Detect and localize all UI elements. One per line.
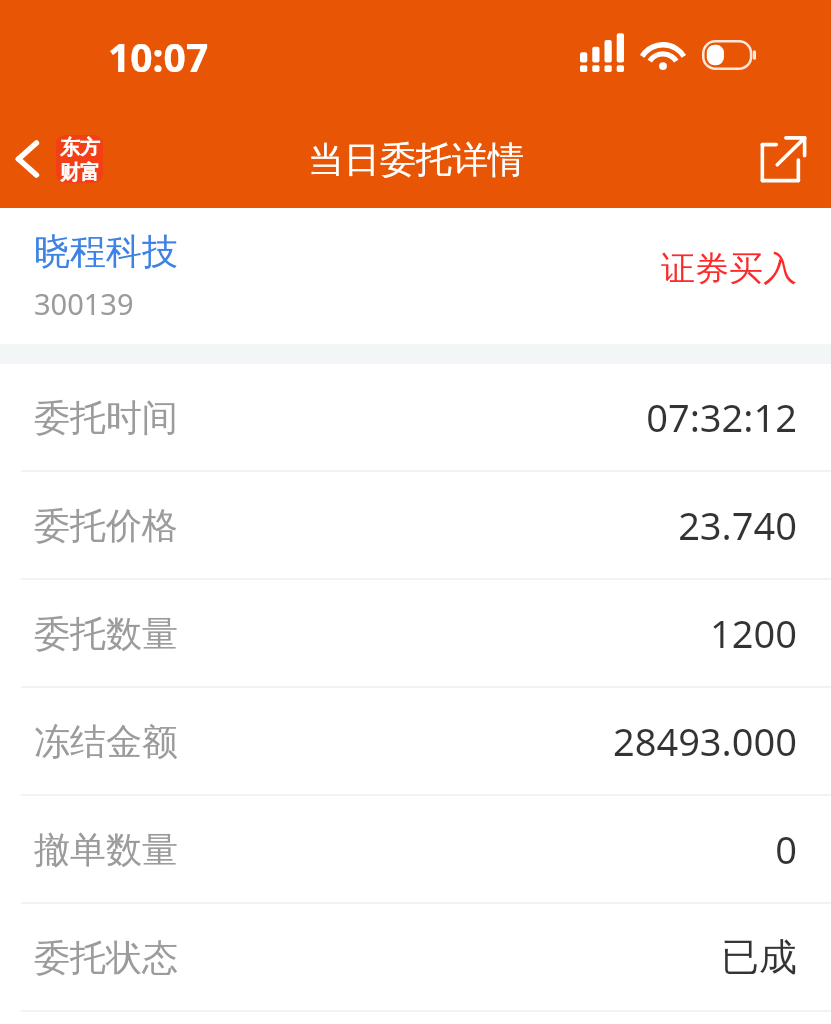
- staticText: 07:32:12: [646, 391, 797, 443]
- staticText: 已成: [721, 933, 797, 981]
- staticText: 委托状态: [34, 935, 178, 980]
- staticText: 东方: [60, 135, 100, 160]
- staticText: 1200: [710, 607, 797, 659]
- button[interactable]: Share: [735, 123, 831, 195]
- staticText: 委托数量: [34, 611, 178, 656]
- button[interactable]: 撤单数量: [0, 796, 831, 902]
- button[interactable]: 冻结金额: [0, 688, 831, 794]
- button[interactable]: 委托数量: [0, 580, 831, 686]
- button[interactable]: 晓程科技: [0, 208, 831, 344]
- staticText: 委托时间: [34, 395, 178, 440]
- staticText: 300139: [34, 284, 134, 323]
- staticText: 0: [775, 823, 797, 875]
- button[interactable]: Back: [0, 127, 117, 191]
- staticText: 28493.000: [612, 715, 797, 767]
- staticText: 证券买入: [661, 247, 797, 290]
- staticText: 财富: [60, 160, 100, 183]
- staticText: 当日委托详情: [308, 137, 524, 182]
- button[interactable]: 委托价格: [0, 472, 831, 578]
- button[interactable]: 委托时间: [0, 364, 831, 470]
- staticText: 撤单数量: [34, 827, 178, 872]
- staticText: 冻结金额: [34, 719, 178, 764]
- staticText: 委托价格: [34, 503, 178, 548]
- button[interactable]: 委托状态: [0, 904, 831, 1010]
- staticText: 10:07: [108, 30, 209, 83]
- staticText: 晓程科技: [34, 229, 178, 274]
- staticText: 23.740: [678, 499, 797, 551]
